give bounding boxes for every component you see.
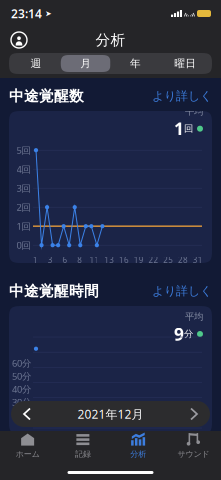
staticText: 1 [33,255,38,265]
button[interactable]: 記録 [55,432,110,464]
staticText: 11 [89,255,99,265]
staticText: 中途覚醒時間 [9,282,99,300]
staticText: 9 [174,322,184,345]
button[interactable]: 分析 [110,432,166,464]
staticText: 曜日 [174,57,196,70]
staticText: 5回 [16,144,30,156]
button[interactable]: 週 [11,55,61,72]
staticText: 6 [62,255,67,265]
staticText: 平均 [185,311,203,322]
staticText: 22 [148,255,158,265]
staticText: 2021年12月 [77,406,143,422]
staticText: 31 [193,255,203,265]
staticText: サウンド [177,449,209,459]
staticText: 2回 [16,201,30,213]
staticText: 13 [104,255,114,265]
staticText: 40分 [12,383,31,395]
staticText: 30分 [12,396,31,408]
staticText: 中途覚醒数 [9,87,84,105]
button[interactable]: サウンド [166,432,221,464]
staticText: 分析 [95,31,125,49]
staticText: 3回 [16,182,30,194]
staticText: 年 [130,57,141,70]
button[interactable]: より詳しく [152,89,212,103]
staticText: 分析 [130,449,146,459]
staticText: ホーム [16,449,40,459]
staticText: より詳しく [152,89,212,103]
button[interactable]: Previous month [11,401,43,427]
button[interactable]: 年 [110,55,160,72]
staticText: 8 [77,255,82,265]
staticText: 50分 [12,370,31,382]
staticText: ➤ [45,9,52,18]
button[interactable]: より詳しく [152,284,212,298]
button[interactable]: Profile [9,30,29,50]
staticText: 分 [184,328,193,340]
button[interactable]: Next month [178,401,210,427]
staticText: 16 [119,255,129,265]
staticText: 平均 [185,106,203,117]
staticText: 60分 [12,357,31,369]
staticText: 回 [184,123,193,134]
staticText: 週 [30,57,41,70]
button[interactable]: ホーム [0,432,55,464]
button[interactable]: 曜日 [160,55,210,72]
staticText: 25 [163,255,173,265]
staticText: 1回 [16,220,30,232]
staticText: 記録 [75,449,91,459]
staticText: 月 [80,57,91,70]
staticText: より詳しく [152,284,212,298]
staticText: 0回 [16,239,30,251]
staticText: 19 [134,255,144,265]
staticText: 23:14 [11,5,42,21]
staticText: 3 [48,255,53,265]
staticText: 1 [174,117,184,140]
staticText: 28 [178,255,188,265]
staticText: 4回 [16,163,30,175]
button[interactable]: 月 [61,55,111,72]
